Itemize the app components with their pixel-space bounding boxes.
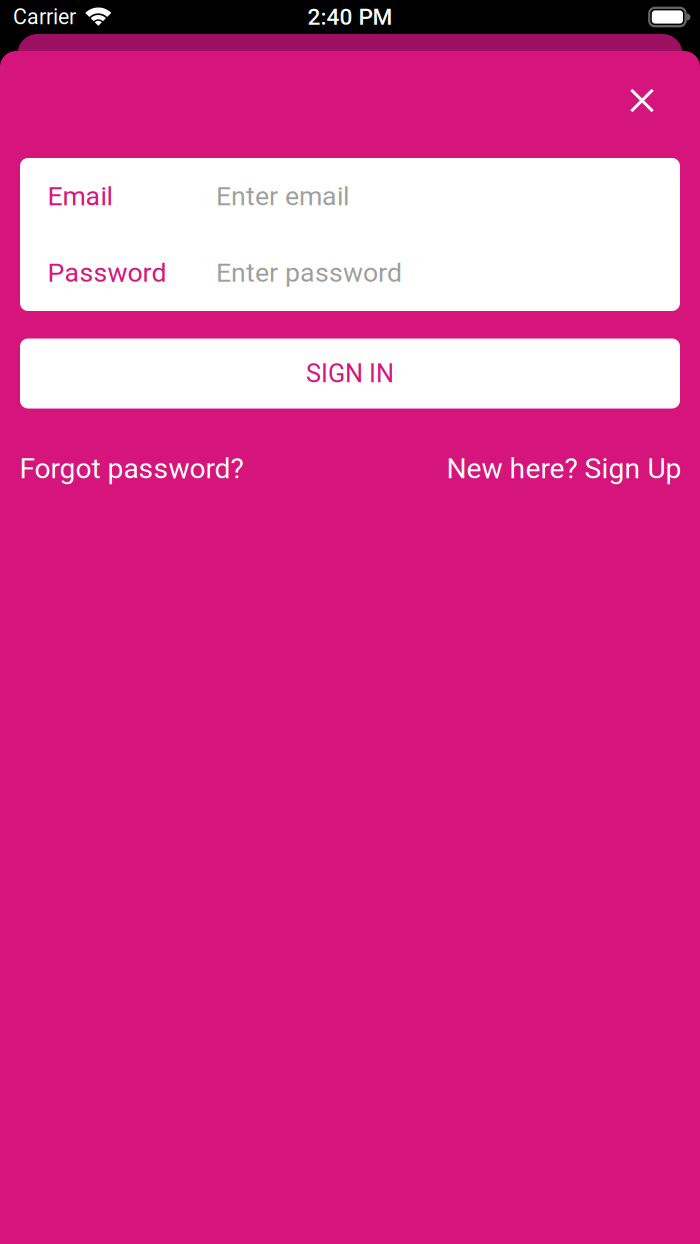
staticText: 2:40 PM	[307, 4, 392, 30]
staticText: SIGN IN	[306, 359, 394, 388]
button[interactable]: Close	[620, 78, 664, 122]
staticText: Email	[47, 181, 112, 212]
staticText: Forgot password?	[19, 452, 243, 485]
staticText: Enter email	[216, 181, 349, 212]
staticText: Carrier	[13, 4, 76, 29]
staticText: New here? Sign Up	[446, 452, 681, 485]
staticText: Enter password	[216, 257, 402, 288]
button[interactable]: SIGN IN	[20, 338, 680, 408]
staticText: Password	[47, 257, 166, 288]
button[interactable]: New here? Sign Up	[446, 452, 681, 485]
button[interactable]: Forgot password?	[19, 452, 243, 485]
